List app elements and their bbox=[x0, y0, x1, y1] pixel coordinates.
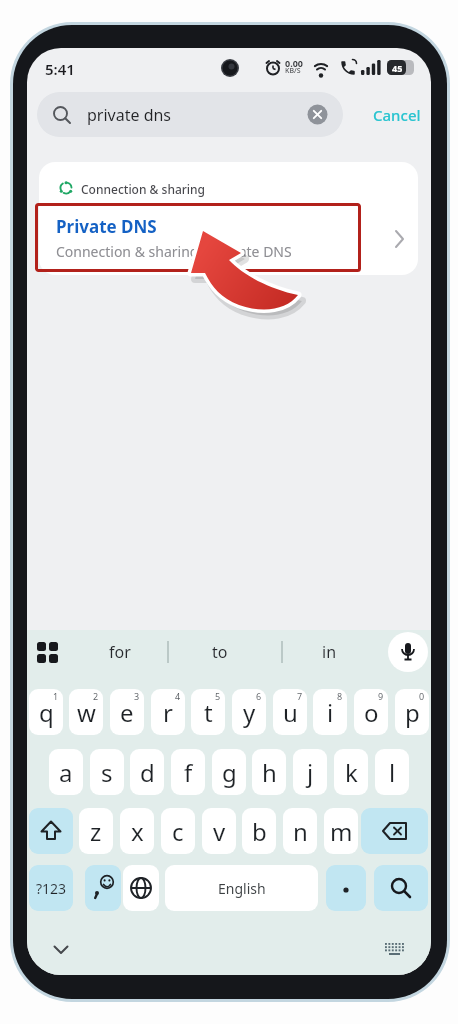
button[interactable]: o bbox=[354, 689, 388, 735]
button[interactable]: w bbox=[69, 689, 103, 735]
button[interactable]: n bbox=[283, 808, 317, 854]
button[interactable]: l bbox=[375, 749, 409, 795]
staticText: Cancel bbox=[373, 105, 421, 125]
button[interactable]: for bbox=[87, 634, 153, 670]
staticText: Connection & sharing bbox=[81, 181, 206, 197]
button[interactable]: in bbox=[299, 634, 359, 670]
button[interactable]: h bbox=[252, 749, 286, 795]
staticText: z bbox=[90, 815, 102, 848]
staticText: h bbox=[262, 756, 277, 789]
button[interactable]: p bbox=[395, 689, 429, 735]
button[interactable]: to bbox=[190, 634, 250, 670]
button[interactable]: c bbox=[161, 808, 195, 854]
button[interactable] bbox=[123, 865, 159, 911]
button[interactable] bbox=[37, 642, 58, 663]
staticText: y bbox=[243, 696, 256, 729]
staticText: l bbox=[389, 756, 396, 789]
staticText: m bbox=[330, 815, 353, 848]
staticText: i bbox=[327, 696, 334, 729]
button[interactable]: d bbox=[130, 749, 164, 795]
button[interactable] bbox=[374, 865, 428, 911]
staticText: 7 bbox=[297, 690, 303, 702]
staticText: x bbox=[131, 815, 144, 848]
button[interactable]: a bbox=[49, 749, 83, 795]
button[interactable]: x bbox=[120, 808, 154, 854]
button[interactable]: e bbox=[110, 689, 144, 735]
staticText: c bbox=[172, 815, 184, 848]
button[interactable] bbox=[326, 865, 366, 911]
button[interactable]: j bbox=[293, 749, 327, 795]
staticText: w bbox=[77, 696, 96, 729]
button[interactable]: ?123 bbox=[29, 865, 73, 911]
staticText: 4 bbox=[175, 690, 181, 702]
staticText: 45 bbox=[392, 62, 403, 74]
button[interactable]: Private DNS bbox=[39, 202, 418, 275]
staticText: Private DNS bbox=[56, 215, 157, 238]
staticText: r bbox=[163, 696, 173, 729]
staticText: in bbox=[322, 641, 337, 663]
staticText: s bbox=[101, 756, 113, 789]
staticText: 2 bbox=[93, 690, 99, 702]
button[interactable]: z bbox=[79, 808, 113, 854]
staticText: English bbox=[218, 879, 266, 898]
staticText: 1 bbox=[53, 690, 59, 702]
staticText: Connection & sharing > Private DNS bbox=[56, 242, 292, 261]
staticText: 5 bbox=[215, 690, 221, 702]
button[interactable]: q bbox=[29, 689, 63, 735]
button[interactable]: f bbox=[171, 749, 205, 795]
staticText: u bbox=[283, 696, 298, 729]
button[interactable]: k bbox=[334, 749, 368, 795]
button[interactable]: r bbox=[151, 689, 185, 735]
staticText: k bbox=[345, 756, 358, 789]
button[interactable]: private dns bbox=[37, 92, 343, 137]
button[interactable]: m bbox=[324, 808, 358, 854]
button[interactable] bbox=[388, 632, 428, 672]
staticText: o bbox=[364, 696, 379, 729]
staticText: 9 bbox=[378, 690, 384, 702]
staticText: t bbox=[204, 696, 213, 729]
staticText: to bbox=[212, 641, 228, 663]
button[interactable] bbox=[53, 945, 69, 955]
staticText: p bbox=[405, 696, 420, 729]
button[interactable]: g bbox=[212, 749, 246, 795]
staticText: v bbox=[213, 815, 226, 848]
staticText: a bbox=[59, 756, 73, 789]
staticText: 0.00 bbox=[285, 57, 303, 69]
button[interactable]: s bbox=[90, 749, 124, 795]
button[interactable]: English bbox=[165, 865, 318, 911]
staticText: ?123 bbox=[36, 879, 67, 898]
staticText: 5:41 bbox=[45, 59, 75, 79]
staticText: KB/S bbox=[285, 66, 301, 76]
staticText: b bbox=[252, 815, 267, 848]
button[interactable]: y bbox=[232, 689, 266, 735]
button[interactable]: b bbox=[242, 808, 276, 854]
staticText: private dns bbox=[87, 104, 172, 126]
button[interactable]: i bbox=[313, 689, 347, 735]
button[interactable]: v bbox=[202, 808, 236, 854]
staticText: 0 bbox=[419, 690, 425, 702]
staticText: n bbox=[293, 815, 308, 848]
button[interactable]: Cancel bbox=[367, 98, 423, 130]
staticText: 6 bbox=[256, 690, 262, 702]
staticText: q bbox=[39, 696, 54, 729]
button[interactable]: u bbox=[273, 689, 307, 735]
staticText: for bbox=[109, 641, 131, 663]
staticText: g bbox=[222, 756, 237, 789]
button[interactable]: t bbox=[191, 689, 225, 735]
staticText: d bbox=[140, 756, 155, 789]
button[interactable] bbox=[361, 808, 428, 854]
button[interactable] bbox=[383, 942, 407, 958]
staticText: 8 bbox=[337, 690, 343, 702]
staticText: j bbox=[307, 756, 314, 789]
staticText: 3 bbox=[134, 690, 140, 702]
button[interactable] bbox=[29, 808, 73, 854]
staticText: e bbox=[120, 696, 134, 729]
staticText: f bbox=[184, 756, 193, 789]
button[interactable] bbox=[85, 865, 121, 911]
